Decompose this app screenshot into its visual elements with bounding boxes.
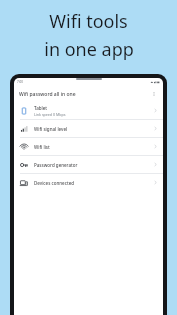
- staticText: Wifi tools: [49, 9, 128, 34]
- staticText: Tablet: [34, 105, 48, 111]
- staticText: 7:00: [17, 80, 23, 84]
- staticText: Wifi signal level: [34, 126, 68, 132]
- staticText: in one app: [44, 37, 134, 62]
- button[interactable]: Devices connected: [14, 174, 163, 191]
- staticText: Wifi list: [34, 144, 50, 150]
- staticText: Link speed 0 Mbps: [34, 112, 66, 117]
- button[interactable]: More options: [149, 89, 159, 99]
- staticText: Devices connected: [34, 180, 75, 186]
- button[interactable]: Tablet: [14, 102, 163, 119]
- button[interactable]: Wifi signal level: [14, 120, 163, 137]
- button[interactable]: Wifi list: [14, 138, 163, 155]
- staticText: Password generator: [34, 162, 78, 168]
- staticText: Wifi password all in one: [19, 91, 76, 98]
- button[interactable]: Password generator: [14, 156, 163, 173]
